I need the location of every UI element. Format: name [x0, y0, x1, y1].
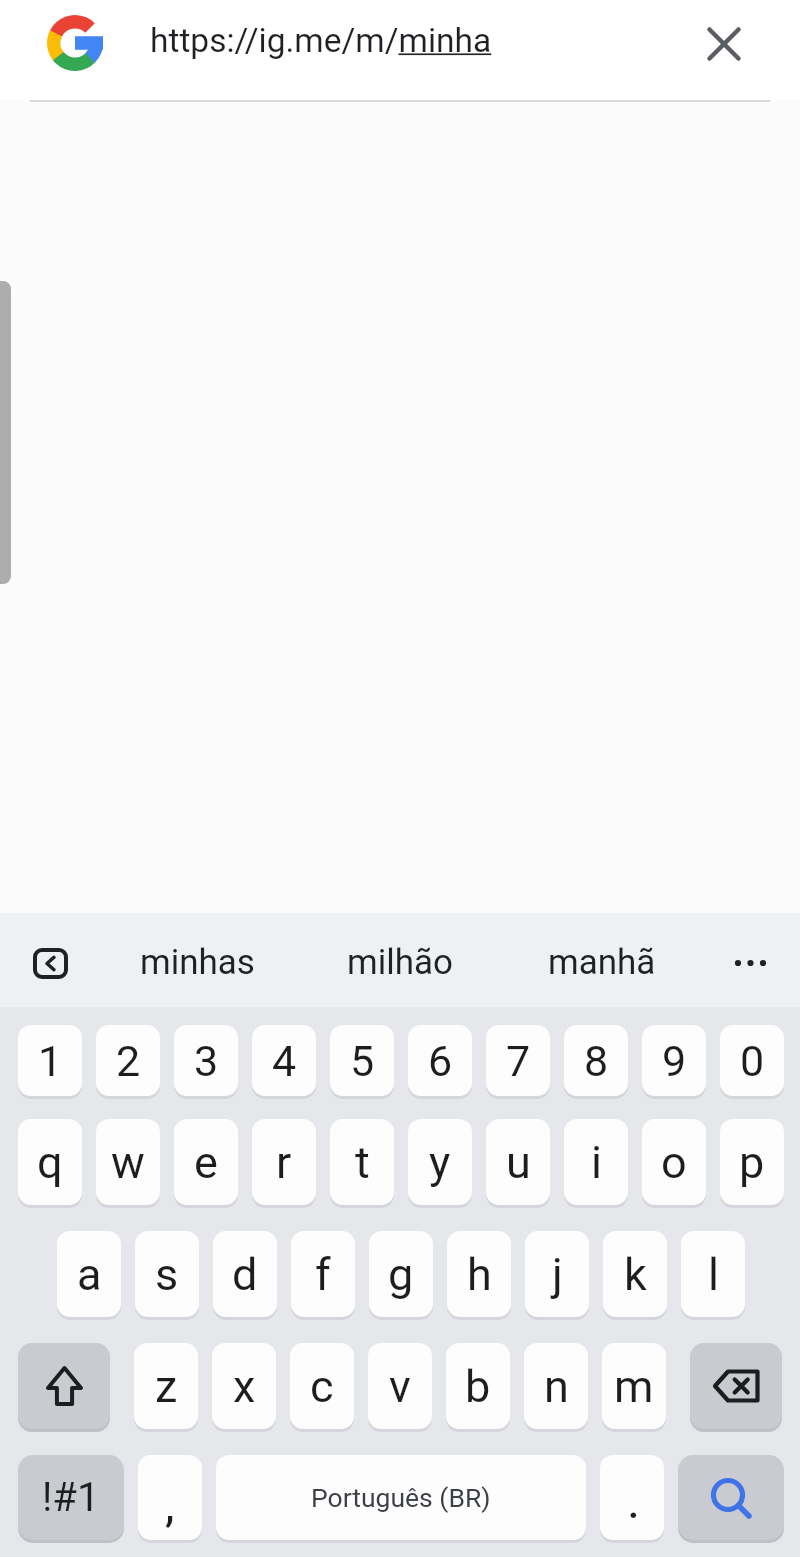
staticText: !#1	[42, 1474, 100, 1521]
staticText: manhã	[548, 942, 656, 983]
staticText: 9	[662, 1036, 687, 1086]
staticText: r	[276, 1136, 292, 1189]
button[interactable]: !#1	[18, 1455, 124, 1540]
staticText: p	[739, 1136, 765, 1189]
button[interactable]: 2	[96, 1025, 160, 1096]
button[interactable]: m	[602, 1343, 666, 1429]
button[interactable]: y	[408, 1119, 472, 1205]
button[interactable]: 0	[720, 1025, 784, 1096]
staticText: e	[194, 1136, 218, 1189]
staticText: 2	[116, 1036, 141, 1086]
button[interactable]: b	[446, 1343, 510, 1429]
staticText: a	[77, 1248, 102, 1301]
button[interactable]: u	[486, 1119, 550, 1205]
button[interactable]	[690, 1343, 782, 1429]
button[interactable]: manhã	[522, 925, 682, 1000]
staticText: s	[155, 1248, 179, 1301]
button[interactable]: t	[330, 1119, 394, 1205]
button[interactable]: 3	[174, 1025, 238, 1096]
button[interactable]: v	[368, 1343, 432, 1429]
button[interactable]: Português (BR)	[216, 1455, 586, 1540]
button[interactable]: .	[600, 1455, 664, 1540]
button[interactable]: o	[642, 1119, 706, 1205]
staticText: 6	[428, 1036, 453, 1086]
staticText: 5	[350, 1036, 375, 1086]
staticText: v	[389, 1360, 411, 1413]
staticText: 1	[38, 1036, 63, 1086]
staticText: ,	[165, 1476, 175, 1532]
button[interactable]	[720, 935, 782, 991]
staticText: x	[233, 1360, 256, 1413]
button[interactable]: 4	[252, 1025, 316, 1096]
button[interactable]: i	[564, 1119, 628, 1205]
button[interactable]: g	[369, 1231, 433, 1317]
button[interactable]: ,	[138, 1455, 202, 1540]
staticText: 8	[584, 1036, 609, 1086]
staticText: i	[591, 1136, 602, 1189]
button[interactable]: 1	[18, 1025, 82, 1096]
staticText: https://ig.me/m/minha	[150, 21, 492, 60]
button[interactable]: minhas	[117, 925, 277, 1000]
staticText: minhas	[140, 942, 255, 983]
button[interactable]	[695, 15, 753, 73]
staticText: l	[708, 1248, 719, 1301]
button[interactable]: 6	[408, 1025, 472, 1096]
button[interactable]: 8	[564, 1025, 628, 1096]
staticText: Português (BR)	[311, 1482, 491, 1513]
staticText: f	[315, 1248, 331, 1301]
staticText: 7	[506, 1036, 531, 1086]
staticText: 4	[272, 1036, 297, 1086]
button[interactable]: a	[57, 1231, 121, 1317]
button[interactable]: k	[603, 1231, 667, 1317]
button[interactable]: d	[213, 1231, 277, 1317]
button[interactable]: c	[290, 1343, 354, 1429]
button[interactable]: h	[447, 1231, 511, 1317]
staticText: q	[37, 1136, 63, 1189]
staticText: .	[627, 1472, 641, 1531]
button[interactable]: p	[720, 1119, 784, 1205]
button[interactable]: x	[212, 1343, 276, 1429]
button[interactable]: j	[525, 1231, 589, 1317]
staticText: h	[467, 1248, 492, 1301]
button[interactable]	[0, 281, 11, 584]
button[interactable]	[678, 1455, 784, 1540]
staticText: d	[232, 1248, 258, 1301]
staticText: t	[355, 1136, 370, 1189]
staticText: k	[624, 1248, 647, 1301]
button[interactable]: l	[681, 1231, 745, 1317]
button[interactable]: 9	[642, 1025, 706, 1096]
button[interactable]: w	[96, 1119, 160, 1205]
staticText: j	[552, 1248, 563, 1301]
button[interactable]	[20, 935, 80, 991]
staticText: w	[111, 1136, 145, 1189]
button[interactable]: n	[524, 1343, 588, 1429]
staticText: n	[544, 1360, 569, 1413]
button[interactable]: milhão	[320, 925, 480, 1000]
staticText: g	[388, 1248, 414, 1301]
staticText: 3	[194, 1036, 219, 1086]
button[interactable]: 7	[486, 1025, 550, 1096]
staticText: u	[506, 1136, 531, 1189]
button[interactable]: s	[135, 1231, 199, 1317]
staticText: z	[155, 1360, 178, 1413]
staticText: b	[465, 1360, 491, 1413]
button[interactable]	[18, 1343, 110, 1429]
button[interactable]	[47, 15, 103, 71]
button[interactable]: 5	[330, 1025, 394, 1096]
staticText: m	[614, 1360, 654, 1413]
button[interactable]: q	[18, 1119, 82, 1205]
button[interactable]: f	[291, 1231, 355, 1317]
staticText: 0	[740, 1036, 765, 1086]
staticText: milhão	[347, 942, 453, 983]
staticText: y	[429, 1136, 451, 1189]
button[interactable]: e	[174, 1119, 238, 1205]
button[interactable]: r	[252, 1119, 316, 1205]
staticText: c	[310, 1360, 334, 1413]
button[interactable]: z	[134, 1343, 198, 1429]
staticText: o	[661, 1136, 687, 1189]
button[interactable]: https://ig.me/m/minha	[150, 16, 590, 64]
